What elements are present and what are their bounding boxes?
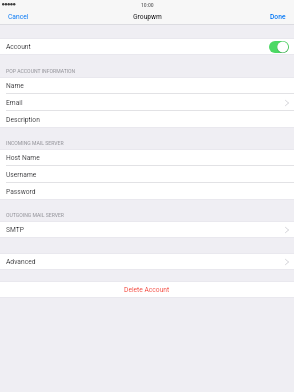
button[interactable]: Advanced	[0, 253, 294, 270]
other: Open	[285, 227, 289, 233]
button[interactable]: Name	[0, 77, 294, 94]
button[interactable]: Username	[0, 166, 294, 183]
staticText: Groupwm	[133, 13, 162, 21]
staticText: Username	[6, 171, 37, 179]
other: Open	[285, 100, 289, 106]
button[interactable]: Description	[0, 111, 294, 128]
staticText: Delete Account	[124, 286, 170, 294]
staticText: Done	[270, 13, 286, 21]
button[interactable]: Done	[262, 10, 294, 24]
staticText: Host Name	[6, 154, 40, 162]
button[interactable]: Account	[0, 38, 294, 55]
staticText: Advanced	[6, 258, 36, 266]
staticText: Account	[6, 43, 31, 51]
staticText: Cancel	[8, 13, 29, 21]
staticText: 10:00	[141, 2, 154, 8]
button[interactable]: Account enabled	[269, 41, 289, 53]
button[interactable]: Email	[0, 94, 294, 111]
staticText: Email	[6, 99, 23, 107]
other: Signal strength	[2, 0, 16, 8]
button[interactable]: Host Name	[0, 149, 294, 166]
staticText: POP ACCOUNT INFORMATION	[6, 68, 76, 74]
staticText: INCOMING MAIL SERVER	[6, 140, 64, 146]
staticText: Description	[6, 116, 40, 124]
staticText: Password	[6, 188, 36, 196]
button[interactable]: Password	[0, 183, 294, 200]
other: Open	[285, 259, 289, 265]
button[interactable]: Cancel	[0, 10, 37, 24]
staticText: OUTGOING MAIL SERVER	[6, 212, 64, 218]
staticText: Name	[6, 82, 24, 90]
button[interactable]: Delete Account	[0, 281, 294, 298]
button[interactable]: SMTP	[0, 221, 294, 238]
staticText: SMTP	[6, 226, 24, 234]
